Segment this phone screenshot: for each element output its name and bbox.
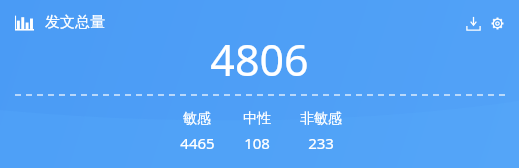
button[interactable]: 发文总量 [15, 13, 105, 32]
staticText: 发文总量 [45, 13, 105, 32]
button[interactable]: 中性 [230, 110, 284, 153]
staticText: 中性 [243, 110, 271, 128]
staticText: 233 [308, 133, 334, 153]
staticText: 4465 [180, 133, 215, 153]
staticText: 非敏感 [300, 110, 342, 128]
button[interactable]: Download [463, 13, 483, 33]
button[interactable]: Settings [487, 13, 507, 33]
button[interactable]: 敏感 [168, 110, 226, 153]
staticText: 敏感 [183, 110, 211, 128]
staticText: 108 [244, 133, 270, 153]
button[interactable]: 非敏感 [288, 110, 354, 153]
staticText: 4806 [210, 30, 309, 89]
